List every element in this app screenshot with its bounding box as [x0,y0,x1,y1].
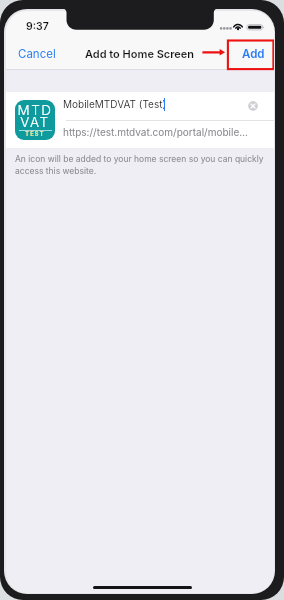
button[interactable]: Clear text [248,101,258,111]
staticText: Add to Home Screen [85,47,195,60]
staticText: VAT [15,114,55,130]
staticText: 9:37 [26,20,49,33]
staticText: https://test.mtdvat.com/portal/mobile… [63,126,248,138]
staticText: TEST [15,131,55,138]
button[interactable]: Add [234,45,264,63]
staticText: MTD [15,102,55,118]
staticText: Cancel [18,47,56,61]
staticText: Add [242,47,265,61]
staticText: MobileMTDVAT (Test) [63,98,167,110]
button[interactable]: Cancel [13,45,51,63]
staticText: An icon will be added to your home scree… [15,154,265,176]
